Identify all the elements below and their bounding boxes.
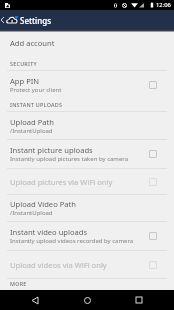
button[interactable]: Upload Video Path xyxy=(0,195,174,221)
button[interactable]: Add account xyxy=(0,30,174,56)
button[interactable]: ownCloud xyxy=(5,14,18,26)
staticText: Instant video uploads xyxy=(10,227,88,237)
button[interactable]: Navigate up xyxy=(0,10,5,30)
button[interactable]: App PIN xyxy=(0,71,174,98)
button[interactable]: Instant video uploads xyxy=(0,222,174,250)
staticText: /InstantUpload xyxy=(10,209,53,217)
staticText: Upload videos via WiFi only xyxy=(10,260,107,270)
staticText: Instantly upload videos recorded by came… xyxy=(10,237,134,245)
staticText: Instant picture uploads xyxy=(10,145,93,155)
button[interactable]: Upload pictures via WiFi only xyxy=(0,169,174,194)
staticText: Upload Video Path xyxy=(10,199,77,209)
button[interactable]: Recent apps xyxy=(122,290,156,310)
staticText: Settings xyxy=(20,15,52,26)
button[interactable]: Instant picture uploads xyxy=(0,140,174,168)
button[interactable]: Upload videos via WiFi only xyxy=(0,251,174,278)
staticText: SECURITY xyxy=(10,60,37,67)
staticText: Add account xyxy=(10,38,55,48)
button[interactable]: Upload Path xyxy=(0,112,174,139)
staticText: 12:06 xyxy=(156,1,171,9)
staticText: Upload Path xyxy=(10,117,54,127)
staticText: /InstantUpload xyxy=(10,127,53,135)
staticText: Protect your client xyxy=(10,86,62,94)
staticText: Instantly upload pictures taken by camer… xyxy=(10,155,129,163)
staticText: Upload pictures via WiFi only xyxy=(10,177,113,187)
button[interactable]: Home xyxy=(70,290,104,310)
staticText: MORE xyxy=(10,280,27,287)
button[interactable]: Back xyxy=(18,290,52,310)
staticText: App PIN xyxy=(10,76,40,86)
staticText: INSTANT UPLOADS xyxy=(10,101,63,108)
